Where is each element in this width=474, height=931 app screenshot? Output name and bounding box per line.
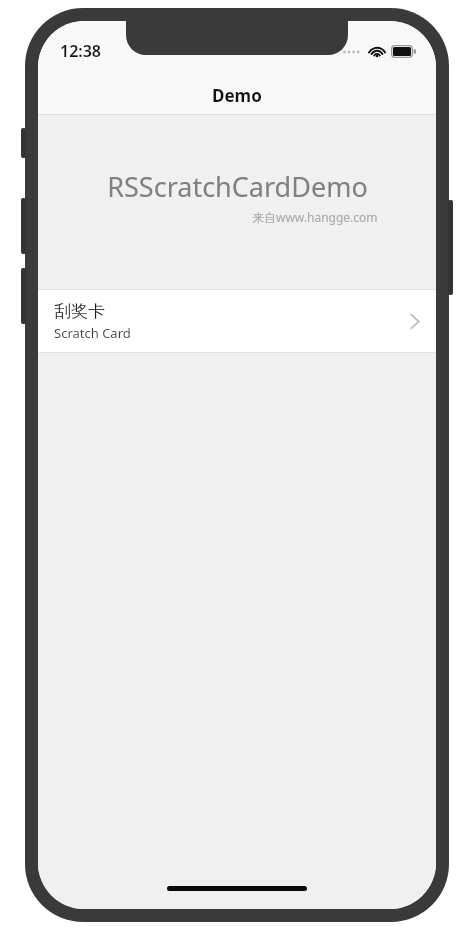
staticText: Scratch Card xyxy=(54,324,131,342)
staticText: RSScratchCardDemo xyxy=(107,168,368,205)
staticText: 来自www.hangge.com xyxy=(252,209,378,225)
other: Open Scratch Card xyxy=(410,313,420,330)
button[interactable]: 刮奖卡 xyxy=(38,290,436,352)
staticText: 刮奖卡 xyxy=(54,301,105,322)
staticText: Demo xyxy=(212,84,262,107)
staticText: 12:38 xyxy=(60,40,102,62)
